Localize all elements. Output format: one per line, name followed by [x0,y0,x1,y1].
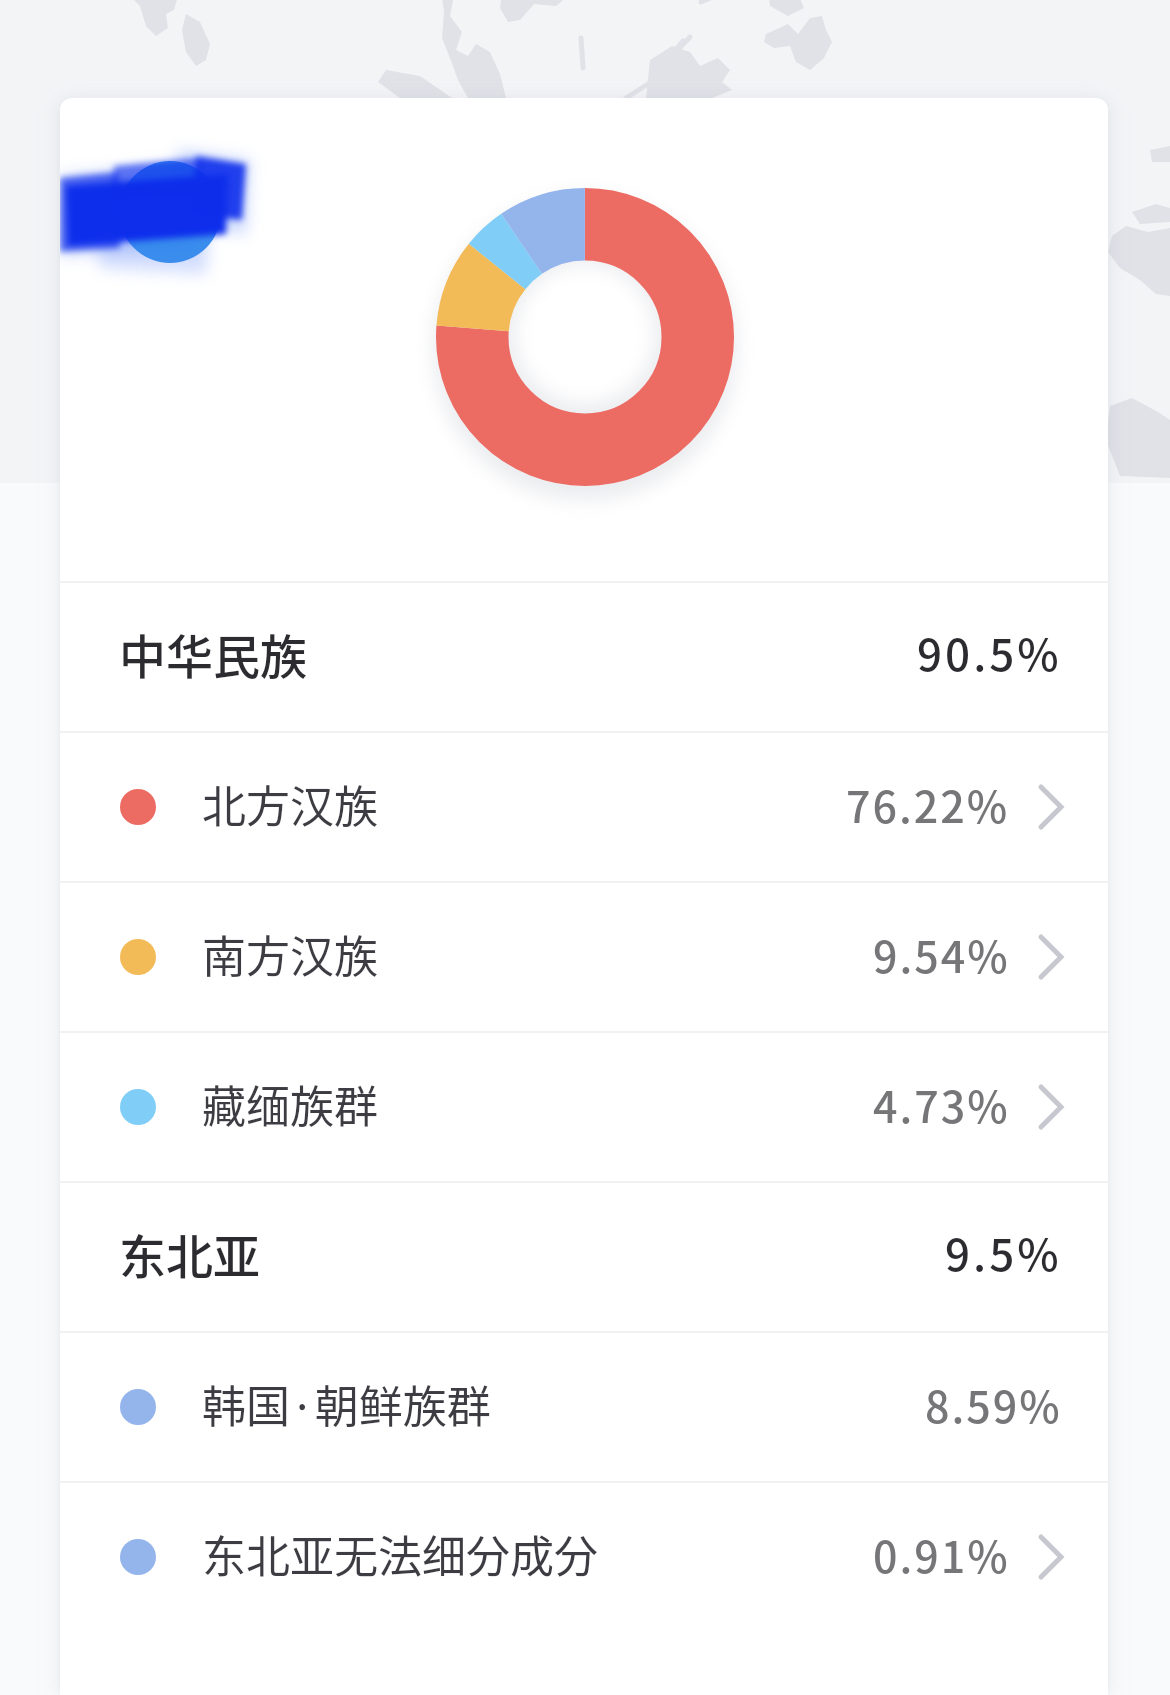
staticText: 北方汉族 [202,772,378,836]
button[interactable]: 东北亚 [60,1183,1108,1331]
staticText: 0.91% [873,1523,1010,1585]
staticText: 藏缅族群 [202,1072,378,1136]
button[interactable]: 东北亚无法细分成分 [60,1483,1108,1631]
staticText: 韩国·朝鲜族群 [202,1372,491,1436]
staticText: 东北亚 [119,1219,260,1287]
staticText: 中华民族 [119,619,307,687]
other: View details [1038,934,1064,980]
button[interactable]: 韩国·朝鲜族群 [60,1333,1108,1481]
other: View details [1038,784,1064,830]
button[interactable]: 南方汉族 [60,883,1108,1031]
staticText: 90.5% [917,620,1062,684]
staticText: 东北亚无法细分成分 [202,1522,598,1586]
other: View details [1038,1084,1064,1130]
staticText: 76.22% [846,773,1010,835]
staticText: 南方汉族 [202,922,378,986]
staticText: 9.54% [873,923,1010,985]
other: View details [1038,1534,1064,1580]
button[interactable]: 北方汉族 [60,733,1108,881]
button[interactable]: 中华民族 [60,583,1108,731]
staticText: 4.73% [873,1073,1010,1135]
button[interactable]: 藏缅族群 [60,1033,1108,1181]
staticText: 8.59% [925,1373,1062,1435]
staticText: 9.5% [945,1220,1062,1284]
